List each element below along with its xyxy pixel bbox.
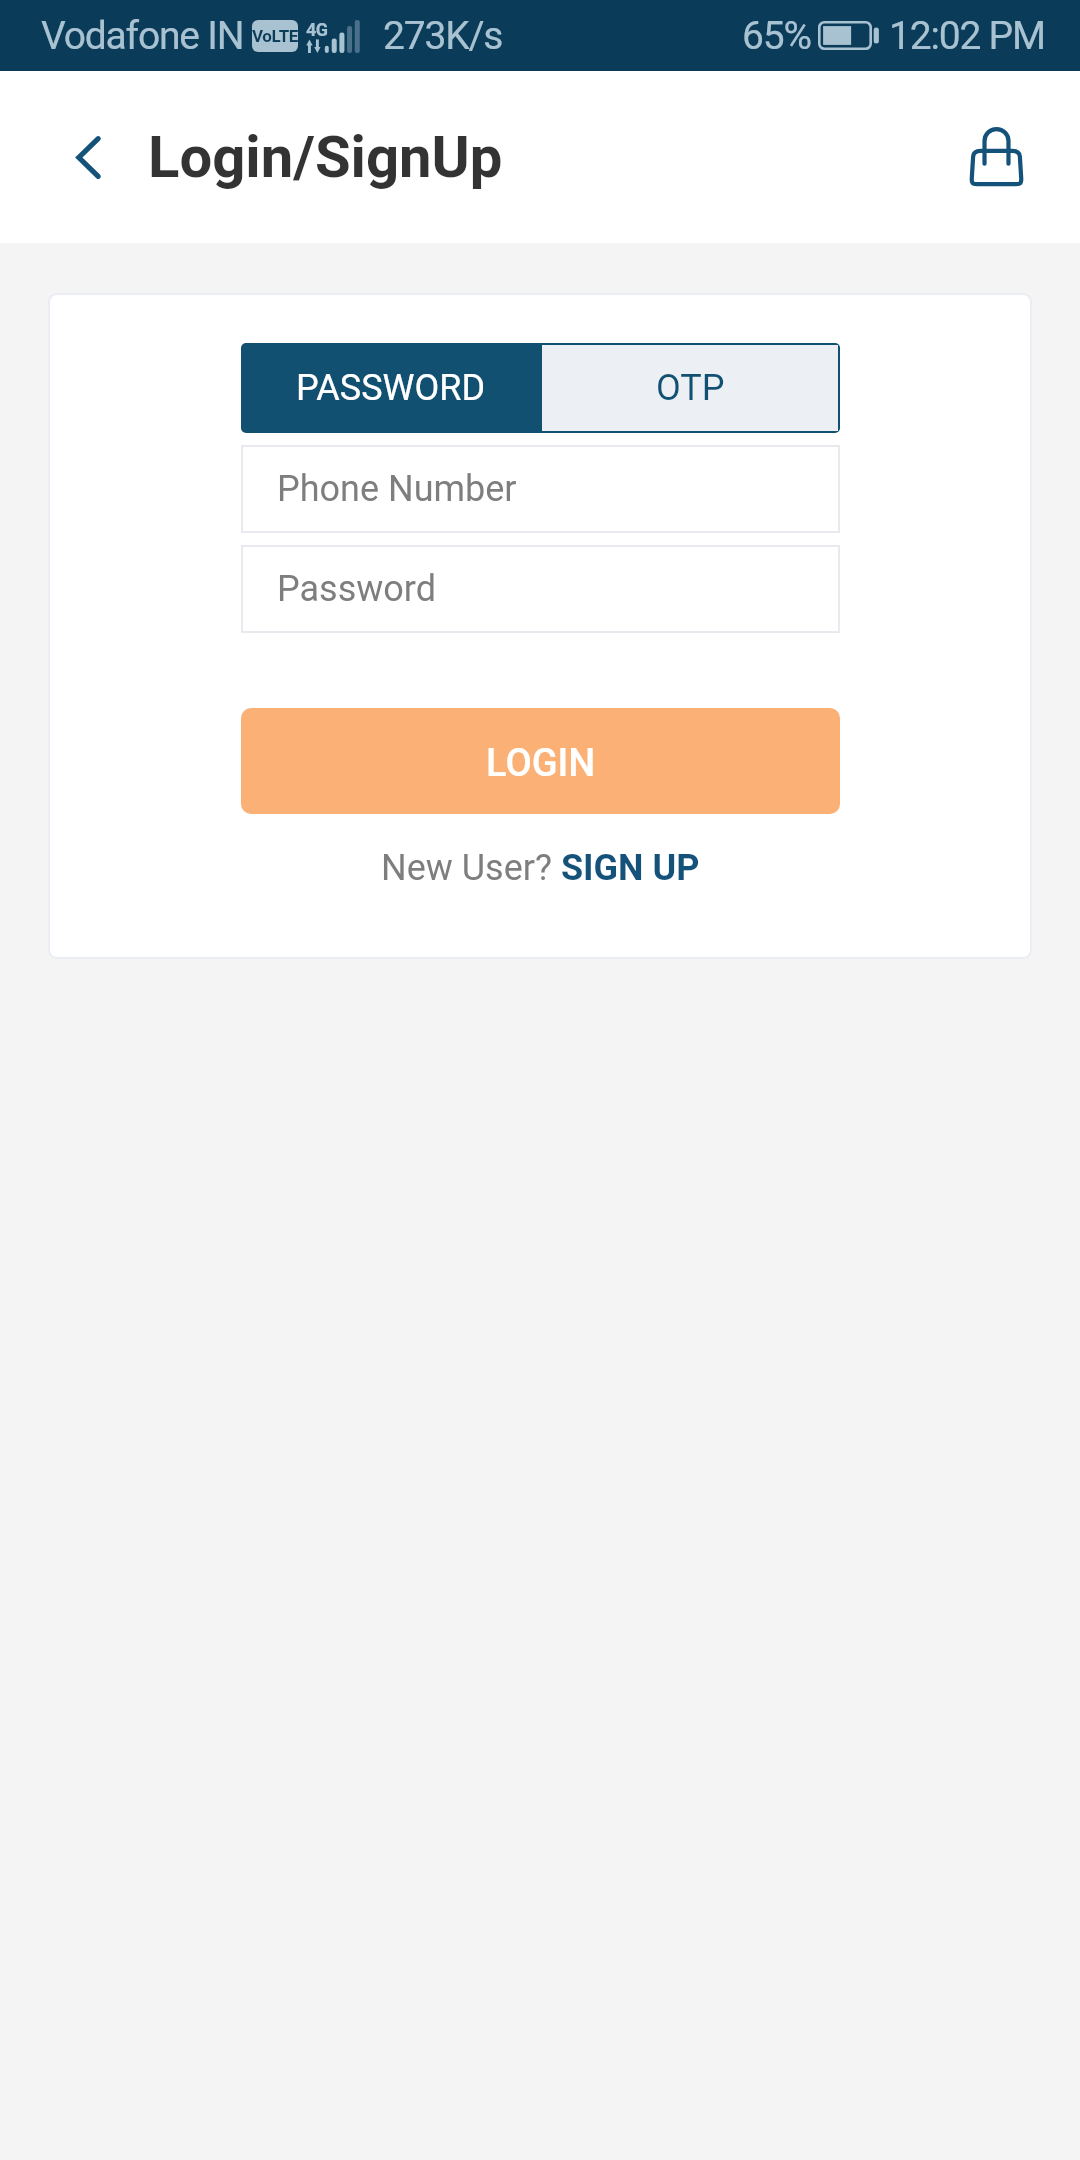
button[interactable]: New User? SIGN UP: [241, 847, 840, 889]
staticText: New User? SIGN UP: [381, 847, 700, 889]
staticText: Login/SignUp: [148, 123, 503, 191]
staticText: Vodafone IN: [41, 13, 244, 59]
button[interactable]: Cart: [948, 109, 1044, 205]
button[interactable]: Phone Number: [241, 445, 840, 533]
staticText: 12:02 PM: [889, 13, 1045, 59]
staticText: Password: [277, 568, 437, 610]
staticText: 65%: [742, 13, 811, 59]
staticText: 273K/s: [383, 13, 503, 59]
button[interactable]: LOGIN: [241, 708, 840, 814]
button[interactable]: OTP: [540, 343, 840, 433]
staticText: LOGIN: [486, 741, 596, 786]
button[interactable]: PASSWORD: [241, 343, 540, 433]
staticText: VoLTE: [252, 26, 298, 46]
staticText: Phone Number: [277, 468, 517, 510]
button[interactable]: Password: [241, 545, 840, 633]
button[interactable]: Back: [40, 109, 136, 205]
staticText: OTP: [656, 367, 725, 409]
staticText: 4G: [306, 19, 334, 40]
staticText: PASSWORD: [296, 367, 486, 409]
